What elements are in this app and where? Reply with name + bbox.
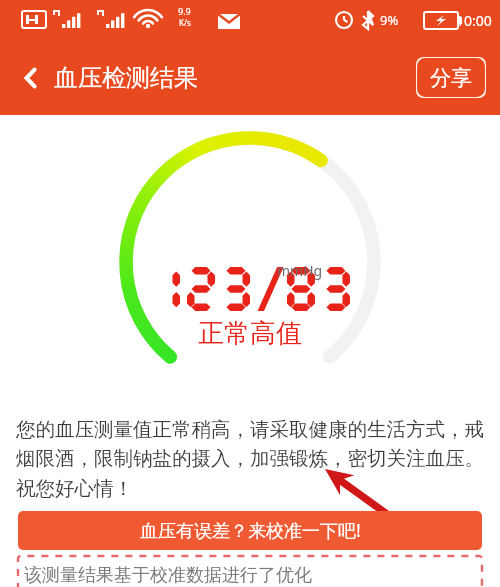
staticText: 您的血压测量值正常稍高，请采取健康的生活方式，戒烟限酒，限制钠盐的摄入，加强锻炼… bbox=[16, 417, 484, 501]
staticText: 血压有误差？来校准一下吧! bbox=[140, 518, 361, 543]
staticText: K/s bbox=[179, 17, 191, 28]
staticText: 正常高值 bbox=[198, 317, 302, 350]
staticText: mmHg bbox=[277, 261, 323, 280]
staticText: 该测量结果基于校准数据进行了优化 bbox=[24, 564, 312, 587]
staticText: 分享 bbox=[430, 65, 472, 91]
staticText: 9% bbox=[380, 11, 399, 29]
button[interactable]: 分享 bbox=[416, 57, 486, 98]
staticText: 10:00 bbox=[456, 11, 492, 30]
button[interactable]: 血压有误差？来校准一下吧! bbox=[18, 511, 482, 550]
staticText: 血压检测结果 bbox=[54, 63, 198, 93]
staticText: 9.9 bbox=[178, 5, 191, 17]
button[interactable]: Back bbox=[14, 61, 48, 95]
